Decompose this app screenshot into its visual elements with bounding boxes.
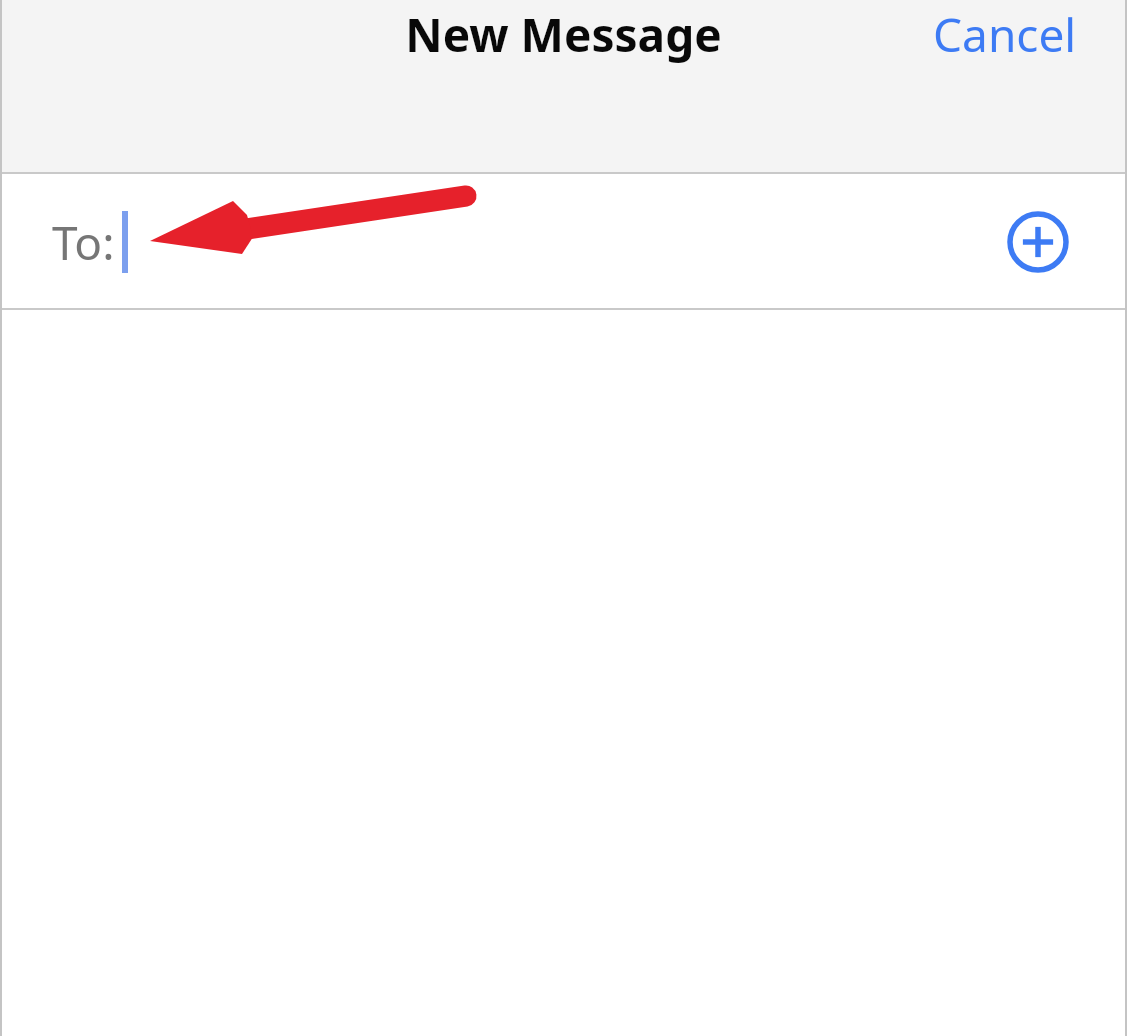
button[interactable]: Add contact bbox=[1001, 205, 1075, 279]
button[interactable]: To: bbox=[0, 174, 1127, 308]
staticText: New Message bbox=[0, 3, 1127, 66]
staticText: Cancel bbox=[933, 3, 1077, 66]
staticText: To: bbox=[52, 211, 115, 274]
button[interactable]: Cancel bbox=[933, 3, 1077, 66]
